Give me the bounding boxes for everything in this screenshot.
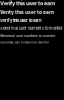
staticText: Verify this user to earn — [0, 18, 41, 23]
staticText: Verify this user to earn — [0, 0, 55, 6]
staticText: Abnormal user numbers to monitor — [0, 34, 55, 38]
staticText: Abnormal user numbers to monitor — [0, 41, 49, 44]
staticText: Abnormal user numbers to monitor — [0, 26, 63, 31]
staticText: Verify this user to earn — [0, 9, 54, 15]
